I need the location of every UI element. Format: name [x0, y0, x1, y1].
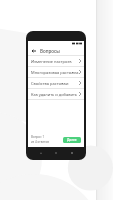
button[interactable]: Recents: [69, 150, 75, 156]
button[interactable]: Далее: [63, 137, 81, 143]
staticText: Свойства растяжки: [31, 81, 79, 86]
staticText: Далее: [67, 138, 77, 142]
staticText: Как удалить и добавить: [31, 92, 79, 97]
button[interactable]: Свойства растяжки: [28, 78, 84, 88]
button[interactable]: Back: [38, 150, 44, 156]
staticText: Вопросы: [40, 48, 60, 54]
button[interactable]: Многоразовая растяжка: [28, 67, 84, 77]
button[interactable]: Home: [53, 150, 59, 156]
staticText: Многоразовая растяжка: [31, 70, 79, 75]
button[interactable]: Изменение настроек: [28, 56, 84, 66]
staticText: Вопрос 1: [31, 135, 45, 139]
staticText: из 4 ответов: [31, 140, 49, 144]
button[interactable]: Как удалить и добавить: [28, 89, 84, 99]
button[interactable]: Back: [31, 48, 37, 54]
staticText: Изменение настроек: [31, 59, 79, 64]
